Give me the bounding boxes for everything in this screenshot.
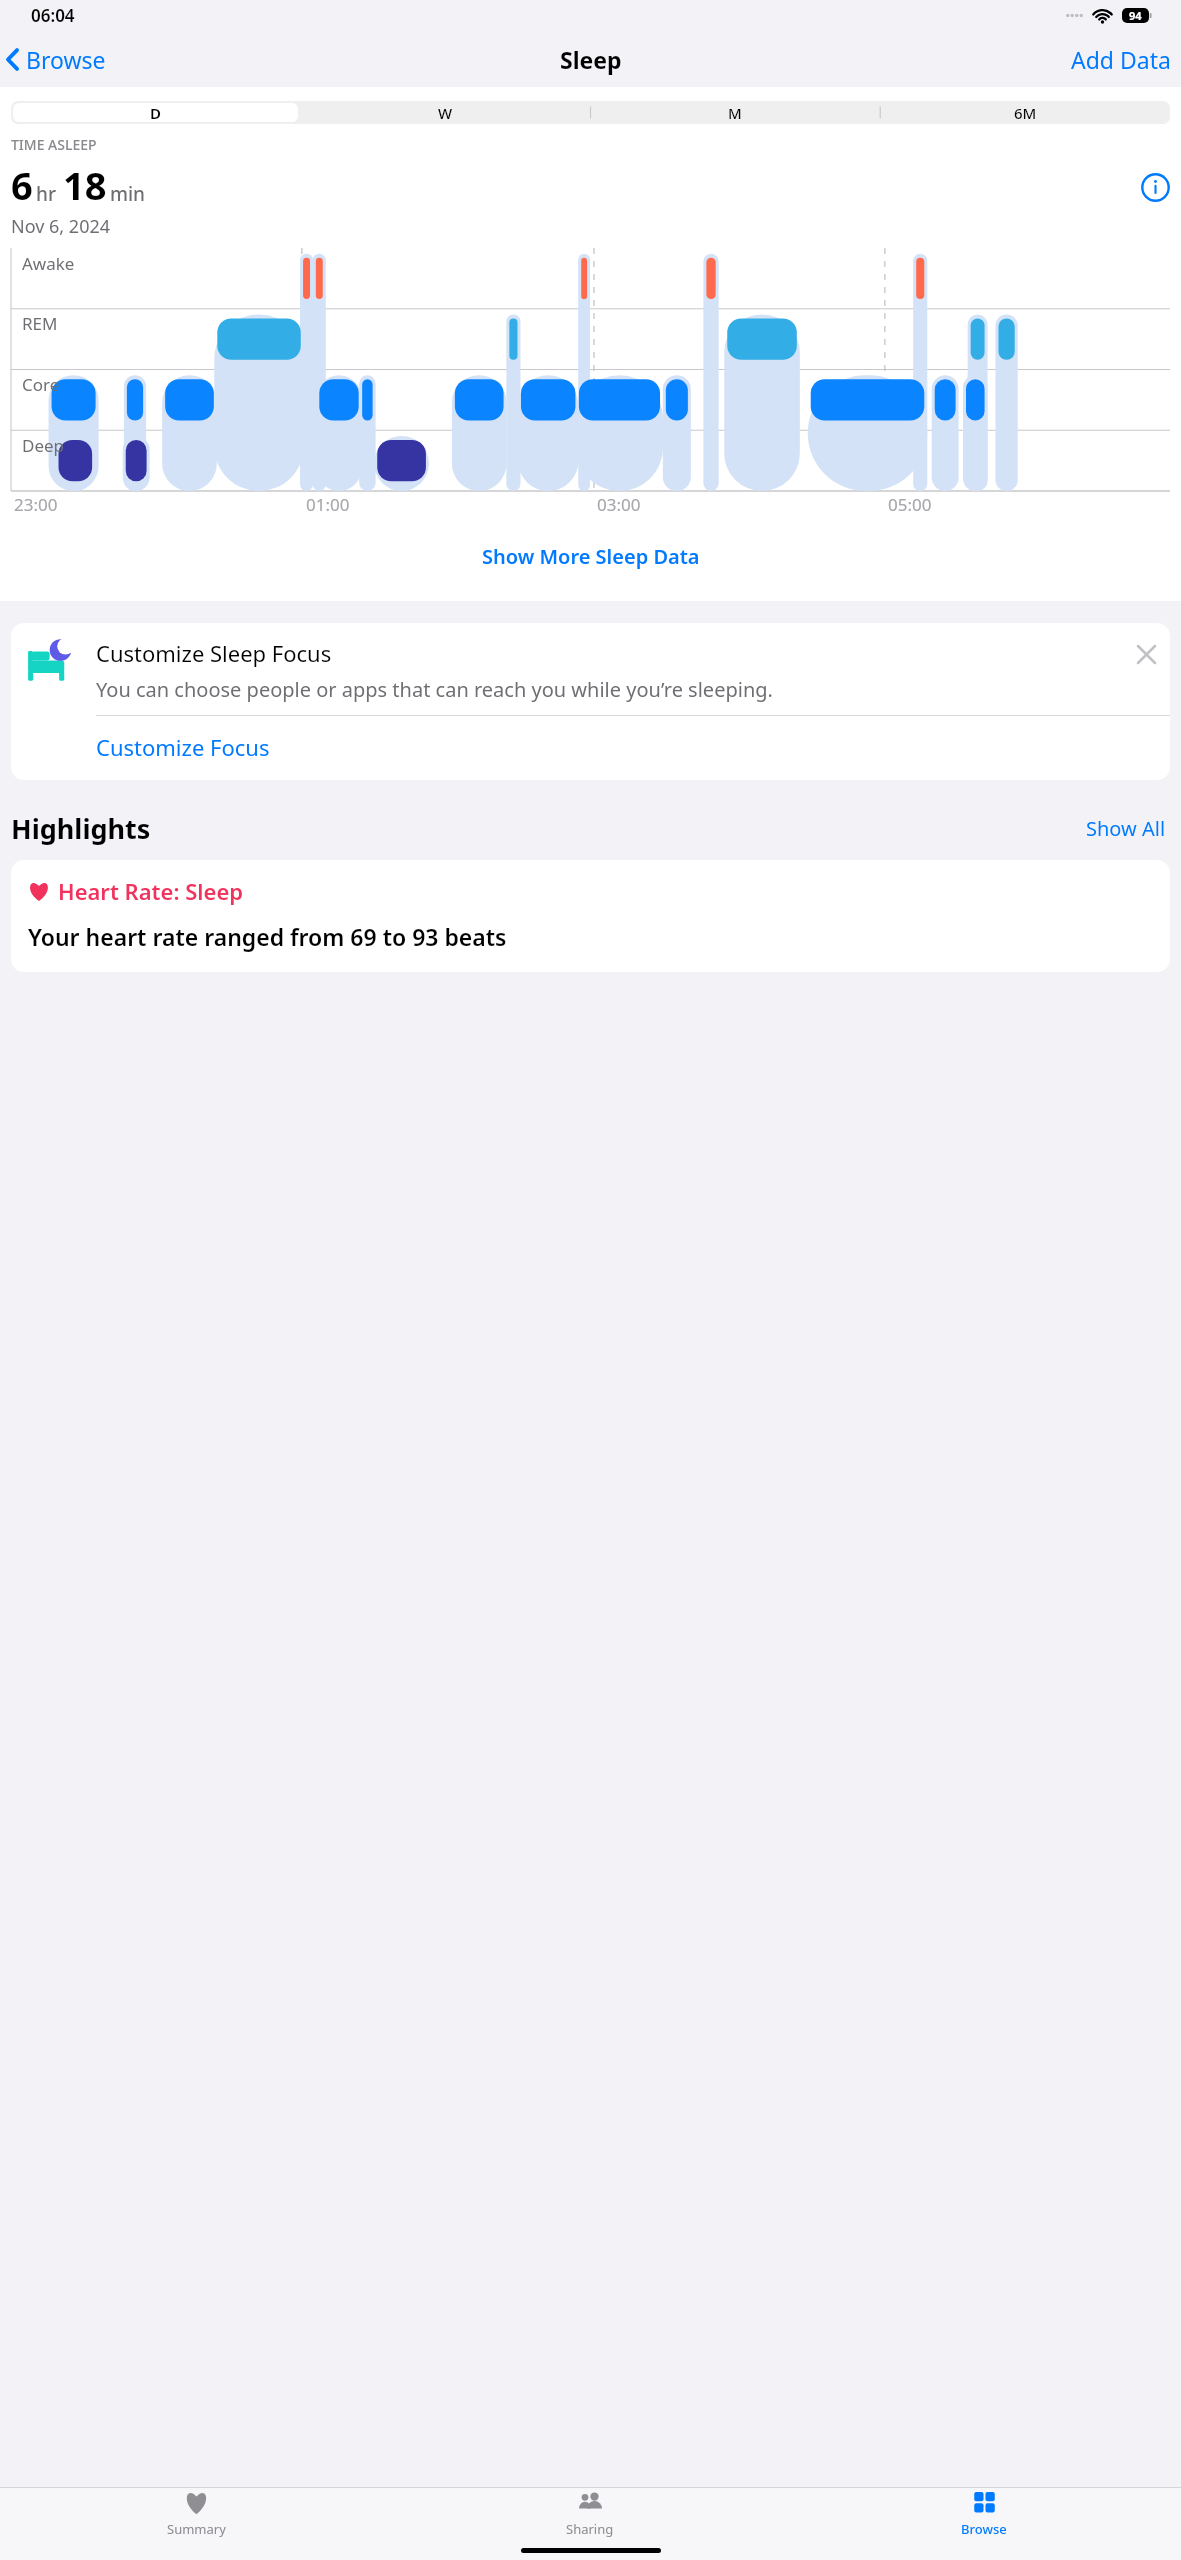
staticText: REM: [22, 312, 58, 335]
staticText: 94: [1129, 8, 1142, 23]
staticText: Browse: [26, 44, 106, 75]
staticText: Sleep: [560, 44, 622, 75]
staticText: 06:04: [31, 4, 75, 27]
button[interactable]: W: [300, 101, 590, 124]
staticText: 03:00: [597, 493, 641, 516]
button[interactable]: Customize Focus: [11, 716, 1170, 780]
staticText: Show All: [1086, 815, 1166, 842]
staticText: 05:00: [888, 493, 932, 516]
staticText: 01:00: [306, 493, 350, 516]
staticText: TIME ASLEEP: [11, 135, 97, 154]
staticText: W: [438, 103, 453, 122]
button[interactable]: Heart Rate: Sleep: [11, 860, 1170, 972]
staticText: Sharing: [566, 2520, 614, 2538]
staticText: Nov 6, 2024: [11, 214, 111, 239]
staticText: You can choose people or apps that can r…: [96, 676, 773, 703]
button[interactable]: Browse: [787, 2488, 1181, 2540]
staticText: Summary: [167, 2520, 226, 2538]
button[interactable]: Sharing: [393, 2488, 787, 2540]
staticText: 6M: [1014, 103, 1037, 122]
staticText: Heart Rate: Sleep: [58, 876, 244, 906]
staticText: Browse: [961, 2520, 1007, 2538]
staticText: 6: [11, 159, 33, 211]
staticText: Highlights: [11, 810, 151, 847]
staticText: 23:00: [14, 493, 58, 516]
staticText: Customize Sleep Focus: [96, 638, 332, 668]
button[interactable]: Add Data: [1061, 38, 1181, 81]
button[interactable]: Dismiss: [1130, 638, 1162, 670]
staticText: Add Data: [1071, 44, 1171, 75]
button[interactable]: M: [590, 101, 880, 124]
button[interactable]: Show More Sleep Data: [0, 536, 1181, 577]
staticText: Awake: [22, 252, 75, 275]
staticText: 18: [63, 159, 107, 211]
staticText: hr: [36, 181, 56, 207]
staticText: M: [728, 103, 742, 122]
button[interactable]: About sleep data: [1141, 173, 1170, 202]
staticText: Your heart rate ranged from 69 to 93 bea…: [28, 921, 507, 952]
button[interactable]: Show All: [1082, 811, 1170, 846]
staticText: Core: [22, 373, 60, 396]
button[interactable]: Browse: [0, 38, 114, 81]
staticText: D: [150, 103, 161, 122]
staticText: min: [110, 181, 146, 207]
staticText: Show More Sleep Data: [482, 543, 700, 570]
staticText: Deep: [22, 434, 65, 457]
staticText: Customize Focus: [96, 732, 270, 762]
button[interactable]: 6M: [880, 101, 1170, 124]
button[interactable]: Summary: [0, 2488, 393, 2540]
button[interactable]: D: [11, 101, 300, 124]
